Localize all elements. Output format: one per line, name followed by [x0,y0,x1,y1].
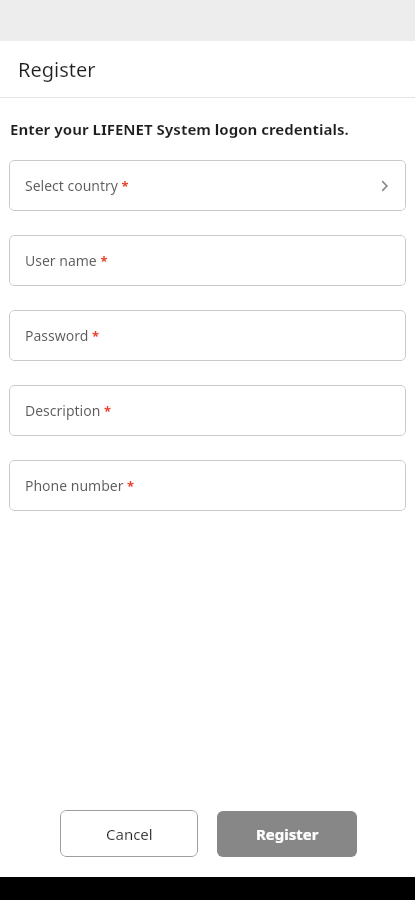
staticText: Description * [25,401,112,420]
staticText: Register [18,56,96,83]
staticText: Enter your LIFENET System logon credenti… [10,119,349,139]
button[interactable]: Cancel [60,810,198,857]
staticText: Phone number * [25,476,135,495]
staticText: Cancel [106,824,153,844]
button[interactable]: Select country * [9,160,406,211]
button[interactable]: Description * [9,385,406,436]
staticText: Password * [25,326,100,345]
staticText: Register [256,824,319,844]
button[interactable]: Phone number * [9,460,406,511]
button[interactable]: Register [217,811,357,857]
button[interactable]: User name * [9,235,406,286]
staticText: Select country * [25,176,129,195]
staticText: User name * [25,251,108,270]
button[interactable]: Password * [9,310,406,361]
